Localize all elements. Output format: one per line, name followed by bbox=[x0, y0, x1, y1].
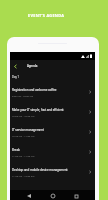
button[interactable]: Back bbox=[11, 62, 19, 70]
staticText: Registration and welcome coffee bbox=[12, 88, 57, 92]
staticText: 11:30 AM - 11:45 AM bbox=[12, 154, 35, 157]
staticText: Day 1 bbox=[12, 75, 19, 79]
staticText: 10:00 AM - 10:45 AM bbox=[12, 114, 35, 117]
staticText: Agenda bbox=[27, 64, 38, 68]
button[interactable]: IT service management bbox=[10, 122, 95, 142]
staticText: EVENT'S AGENDA bbox=[28, 13, 65, 18]
button[interactable]: Make your IT simple, fast and efficient bbox=[10, 102, 95, 122]
button[interactable]: Back bbox=[10, 60, 95, 71]
staticText: 11:45 AM - 12:30 PM bbox=[12, 174, 35, 177]
staticText: Break bbox=[12, 148, 20, 152]
button[interactable]: Home bbox=[48, 191, 58, 200]
staticText: Desktop and mobile device management bbox=[12, 168, 68, 172]
staticText: 10:45 AM - 11:30 AM bbox=[12, 134, 35, 137]
button[interactable]: Recents bbox=[71, 191, 81, 200]
button[interactable]: Registration and welcome coffee bbox=[10, 82, 95, 102]
staticText: 9:00 AM - 10:00 AM bbox=[12, 94, 34, 97]
button[interactable]: Back bbox=[24, 191, 34, 200]
staticText: IT service management bbox=[12, 128, 44, 132]
staticText: Make your IT simple, fast and efficient bbox=[12, 108, 64, 112]
button[interactable]: Break bbox=[10, 142, 95, 162]
button[interactable]: Desktop and mobile device management bbox=[10, 162, 95, 182]
